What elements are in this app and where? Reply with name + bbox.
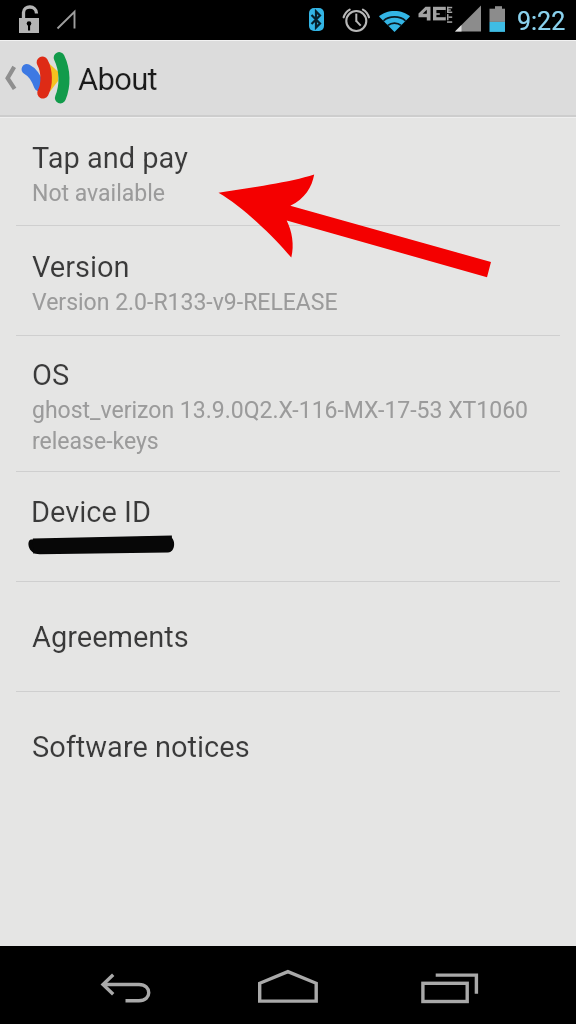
staticText: Tap and pay	[32, 141, 188, 175]
staticText: Not available	[32, 180, 165, 207]
staticText: OS	[32, 358, 70, 392]
button[interactable]: OS	[0, 336, 576, 471]
button[interactable]: Navigate up	[0, 41, 78, 117]
staticText: ghost_verizon 13.9.0Q2.X-116-MX-17-53 XT…	[32, 397, 540, 454]
button[interactable]: Home	[192, 946, 384, 1024]
button[interactable]: Device ID	[0, 472, 576, 581]
staticText: Version 2.0-R133-v9-RELEASE	[32, 289, 338, 316]
staticText: Agreements	[32, 620, 189, 654]
button[interactable]: Version	[0, 226, 576, 335]
button[interactable]: Tap and pay	[0, 118, 576, 225]
staticText: Version	[32, 250, 130, 284]
staticText: Device ID	[31, 495, 151, 529]
staticText: About	[78, 61, 158, 97]
button[interactable]: Agreements	[0, 582, 576, 691]
button[interactable]: Software notices	[0, 692, 576, 801]
staticText: 9:22	[517, 7, 566, 36]
staticText: Software notices	[32, 730, 250, 764]
button[interactable]: Back	[0, 946, 192, 1024]
button[interactable]: Recent apps	[384, 946, 576, 1024]
